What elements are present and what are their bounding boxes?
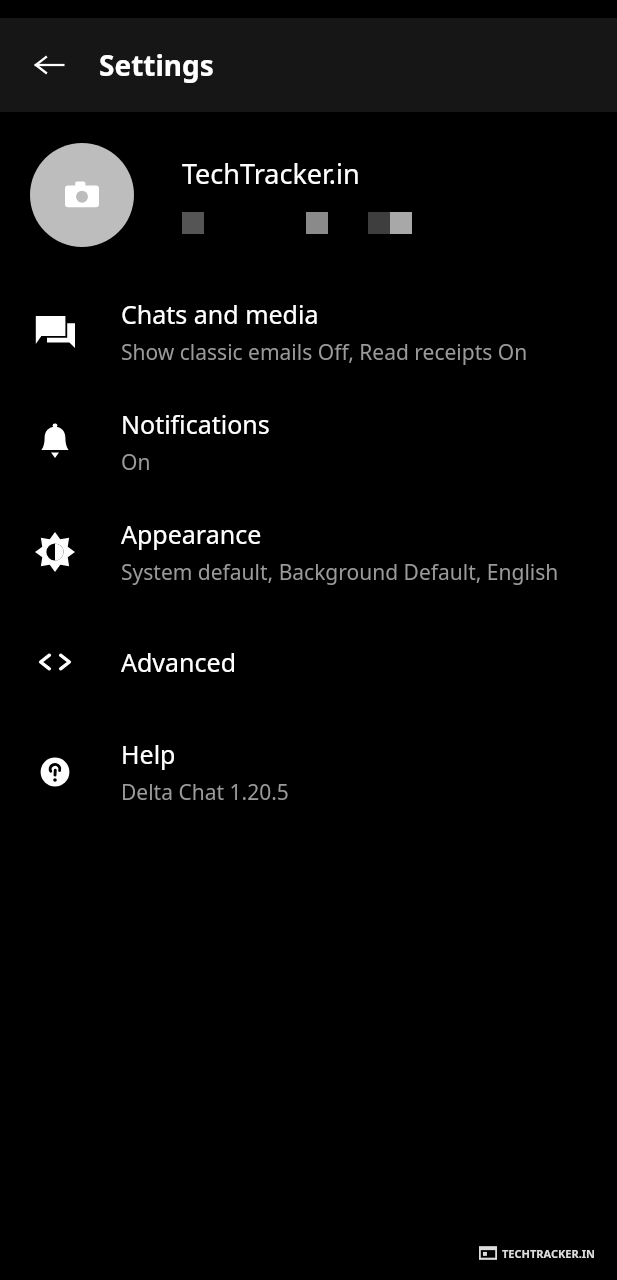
staticText: TechTracker.in xyxy=(182,155,360,192)
button[interactable]: Notifications xyxy=(0,387,617,497)
staticText: Chats and media xyxy=(121,297,319,331)
staticText: Show classic emails Off, Read receipts O… xyxy=(121,338,528,367)
button[interactable]: Appearance xyxy=(0,497,617,607)
button[interactable]: Advanced xyxy=(0,607,617,717)
staticText: Notifications xyxy=(121,407,270,441)
button[interactable]: Help xyxy=(0,717,617,827)
button[interactable]: Back xyxy=(26,42,72,88)
staticText: System default, Background Default, Engl… xyxy=(121,558,559,587)
staticText: Advanced xyxy=(121,645,237,679)
staticText: TECHTRACKER.IN xyxy=(502,1246,595,1261)
button[interactable]: TechTracker.in xyxy=(0,112,617,277)
staticText: Settings xyxy=(99,46,214,84)
staticText: Appearance xyxy=(121,517,262,551)
button[interactable]: Chats and media xyxy=(0,277,617,387)
staticText: Delta Chat 1.20.5 xyxy=(121,778,289,807)
staticText: Help xyxy=(121,737,176,771)
staticText: On xyxy=(121,448,151,477)
